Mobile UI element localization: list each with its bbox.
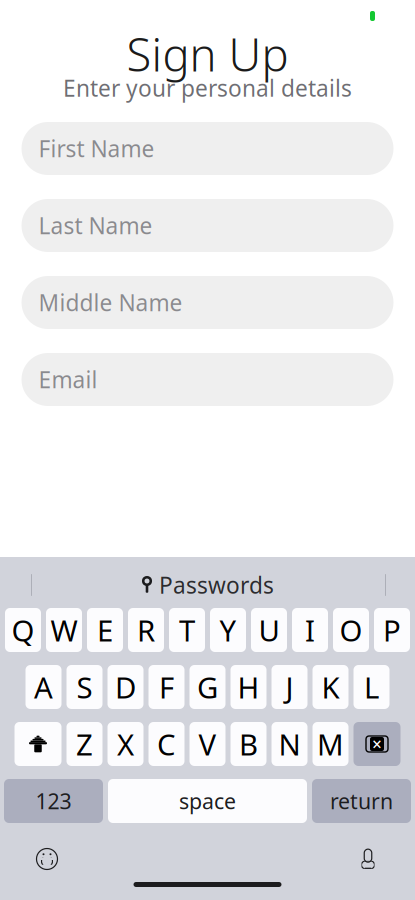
staticText: M [317, 724, 344, 763]
button[interactable]: H [230, 665, 266, 709]
button[interactable]: C [148, 722, 184, 766]
button[interactable]: Dictation [347, 840, 389, 878]
staticText: P [383, 610, 401, 649]
button[interactable]: Q [5, 608, 41, 652]
button[interactable]: A [25, 665, 61, 709]
staticText: Last Name [38, 210, 152, 240]
button[interactable]: K [312, 665, 348, 709]
staticText: U [258, 610, 279, 649]
staticText: R [137, 610, 155, 649]
button[interactable]: Emoji [26, 840, 68, 878]
button[interactable]: S [66, 665, 102, 709]
staticText: K [321, 667, 339, 706]
button[interactable]: G [189, 665, 225, 709]
staticText: X [117, 724, 134, 763]
button[interactable]: First Name [21, 122, 393, 175]
staticText: Passwords [159, 570, 274, 600]
button[interactable]: space [108, 779, 307, 823]
staticText: return [330, 787, 393, 815]
button[interactable]: P [374, 608, 410, 652]
button[interactable]: T [169, 608, 205, 652]
button[interactable]: I [292, 608, 328, 652]
staticText: W [50, 610, 77, 649]
staticText: Email [38, 364, 97, 394]
staticText: space [179, 787, 236, 815]
button[interactable]: M [312, 722, 348, 766]
button[interactable]: B [230, 722, 266, 766]
button[interactable]: D [107, 665, 143, 709]
button[interactable]: L [353, 665, 389, 709]
staticText: C [157, 724, 176, 763]
button[interactable]: Email [21, 353, 393, 406]
staticText: × [372, 732, 382, 755]
staticText: T [179, 610, 195, 649]
staticText: Sign Up [126, 24, 288, 84]
staticText: I [305, 610, 315, 649]
staticText: V [198, 724, 216, 763]
button[interactable]: R [128, 608, 164, 652]
button[interactable]: Last Name [21, 199, 393, 252]
button[interactable]: 123 [4, 779, 103, 823]
staticText: A [34, 667, 53, 706]
button[interactable]: return [312, 779, 411, 823]
staticText: Enter your personal details [63, 73, 352, 103]
button[interactable]: W [46, 608, 82, 652]
button[interactable]: U [251, 608, 287, 652]
button[interactable]: Middle Name [21, 276, 393, 329]
staticText: Y [219, 610, 236, 649]
staticText: Q [11, 610, 34, 649]
staticText: H [237, 667, 259, 706]
button[interactable]: N [271, 722, 307, 766]
button[interactable]: X [107, 722, 143, 766]
staticText: G [197, 667, 218, 706]
staticText: E [97, 610, 113, 649]
button[interactable]: Y [210, 608, 246, 652]
staticText: S [76, 667, 92, 706]
button[interactable]: Passwords [127, 566, 288, 604]
button[interactable]: O [333, 608, 369, 652]
staticText: Middle Name [38, 287, 182, 317]
staticText: O [339, 610, 362, 649]
button[interactable]: V [189, 722, 225, 766]
button[interactable]: E [87, 608, 123, 652]
staticText: 123 [35, 787, 71, 815]
staticText: First Name [38, 133, 154, 163]
staticText: F [159, 667, 174, 706]
staticText: N [278, 724, 300, 763]
button[interactable]: Shift [14, 722, 61, 766]
button[interactable]: Z [66, 722, 102, 766]
staticText: Z [76, 724, 93, 763]
button[interactable]: Delete [353, 722, 400, 766]
staticText: L [364, 667, 379, 706]
staticText: J [285, 667, 293, 706]
staticText: B [239, 724, 258, 763]
button[interactable]: J [271, 665, 307, 709]
button[interactable]: F [148, 665, 184, 709]
staticText: D [115, 667, 136, 706]
